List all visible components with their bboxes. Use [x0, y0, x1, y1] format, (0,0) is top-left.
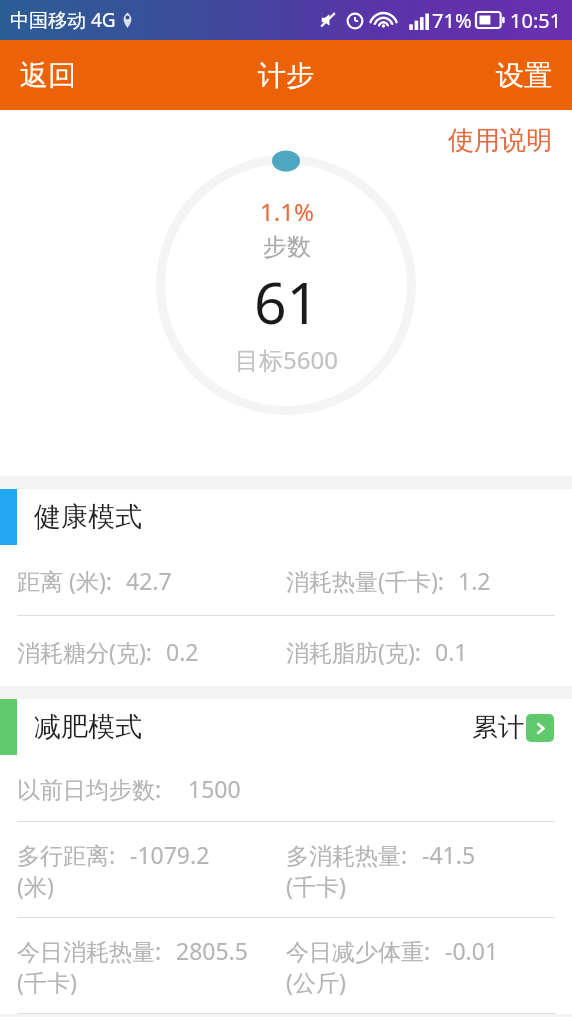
staticText: 多行距离:	[17, 839, 116, 870]
staticText: -41.5	[422, 839, 476, 870]
staticText: (千卡)	[286, 870, 346, 901]
staticText: 61	[254, 263, 320, 341]
staticText: 累计	[472, 711, 524, 744]
staticText: 1.1%	[260, 195, 314, 228]
staticText: -1079.2	[130, 839, 210, 870]
staticText: 多消耗热量:	[286, 839, 408, 870]
staticText: 2805.5	[176, 935, 248, 966]
staticText: 今日消耗热量:	[17, 935, 162, 966]
staticText: 消耗热量(千卡):	[286, 565, 444, 596]
staticText: (千卡)	[17, 966, 77, 997]
staticText: 中国移动 4G	[10, 7, 116, 33]
staticText: 使用说明	[448, 124, 552, 157]
staticText: 设置	[496, 58, 552, 93]
staticText: 消耗脂肪(克):	[286, 636, 421, 667]
button[interactable]: 累计	[466, 707, 560, 748]
button[interactable]: 设置	[476, 40, 572, 110]
staticText: 42.7	[126, 565, 172, 596]
staticText: 0.1	[435, 636, 468, 667]
staticText: 健康模式	[34, 500, 142, 534]
button[interactable]: 返回	[0, 40, 96, 110]
staticText: 今日减少体重:	[286, 935, 431, 966]
staticText: 步数	[263, 232, 311, 262]
staticText: 距离 (米):	[17, 565, 112, 596]
staticText: 71%	[432, 7, 472, 34]
staticText: 目标5600	[235, 343, 338, 376]
staticText: 消耗糖分(克):	[17, 636, 152, 667]
staticText: -0.01	[445, 935, 499, 966]
staticText: 以前日均步数:	[17, 773, 162, 804]
staticText: 10:51	[510, 7, 562, 34]
button[interactable]: 使用说明	[440, 120, 560, 161]
staticText: 计步	[258, 58, 314, 93]
staticText: (公斤)	[286, 966, 346, 997]
other: 查看累计	[526, 714, 554, 742]
staticText: 减肥模式	[34, 710, 142, 744]
staticText: 1.2	[458, 565, 491, 596]
staticText: 1500	[188, 773, 241, 804]
staticText: 返回	[20, 58, 76, 93]
staticText: (米)	[17, 870, 54, 901]
staticText: 0.2	[166, 636, 199, 667]
